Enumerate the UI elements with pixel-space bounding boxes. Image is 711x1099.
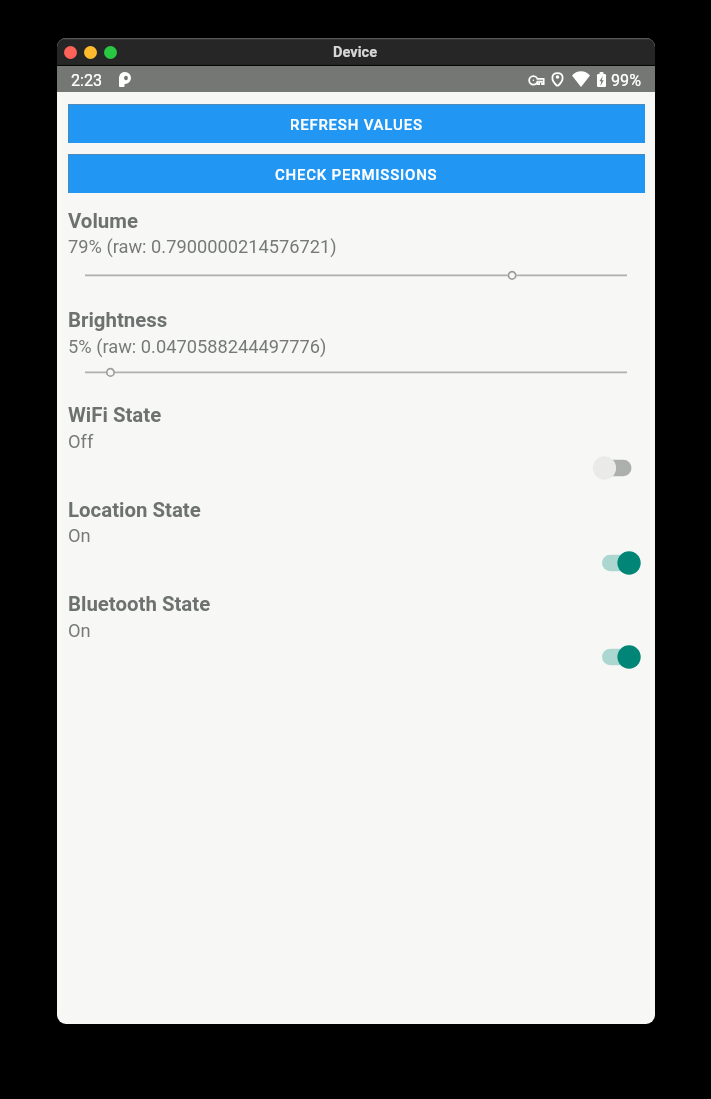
other: Wi-Fi connected [572,72,590,87]
staticText: Off [68,431,94,452]
button[interactable]: Close window [64,46,77,59]
staticText: 99% [611,71,642,90]
other: Location on [552,72,563,87]
button[interactable] [73,264,639,286]
staticText: Location State [68,498,201,522]
button[interactable]: CHECK PERMISSIONS [68,154,645,193]
staticText: 79% (raw: 0.7900000214576721) [68,236,337,257]
staticText: On [68,525,91,546]
other: Pandora [119,72,131,87]
staticText: Bluetooth State [68,592,211,616]
staticText: On [68,620,91,641]
button[interactable]: Minimize window [84,46,97,59]
other: VPN active [529,72,544,87]
staticText: REFRESH VALUES [290,116,423,134]
staticText: 5% (raw: 0.0470588244497776) [68,336,327,357]
staticText: Volume [68,209,138,233]
button[interactable]: Zoom window [104,46,117,59]
staticText: CHECK PERMISSIONS [275,166,438,184]
staticText: Device [333,43,378,60]
staticText: WiFi State [68,403,162,427]
button[interactable]: Disabled, tap to turn on [593,455,635,481]
button[interactable]: Enabled, tap to turn off [599,550,641,576]
button[interactable]: Enabled, tap to turn off [599,644,641,670]
other: Battery 99 percent [597,72,606,87]
staticText: Brightness [68,308,168,332]
button[interactable] [73,361,639,383]
staticText: 2:23 [71,71,103,90]
button[interactable]: REFRESH VALUES [68,104,645,143]
